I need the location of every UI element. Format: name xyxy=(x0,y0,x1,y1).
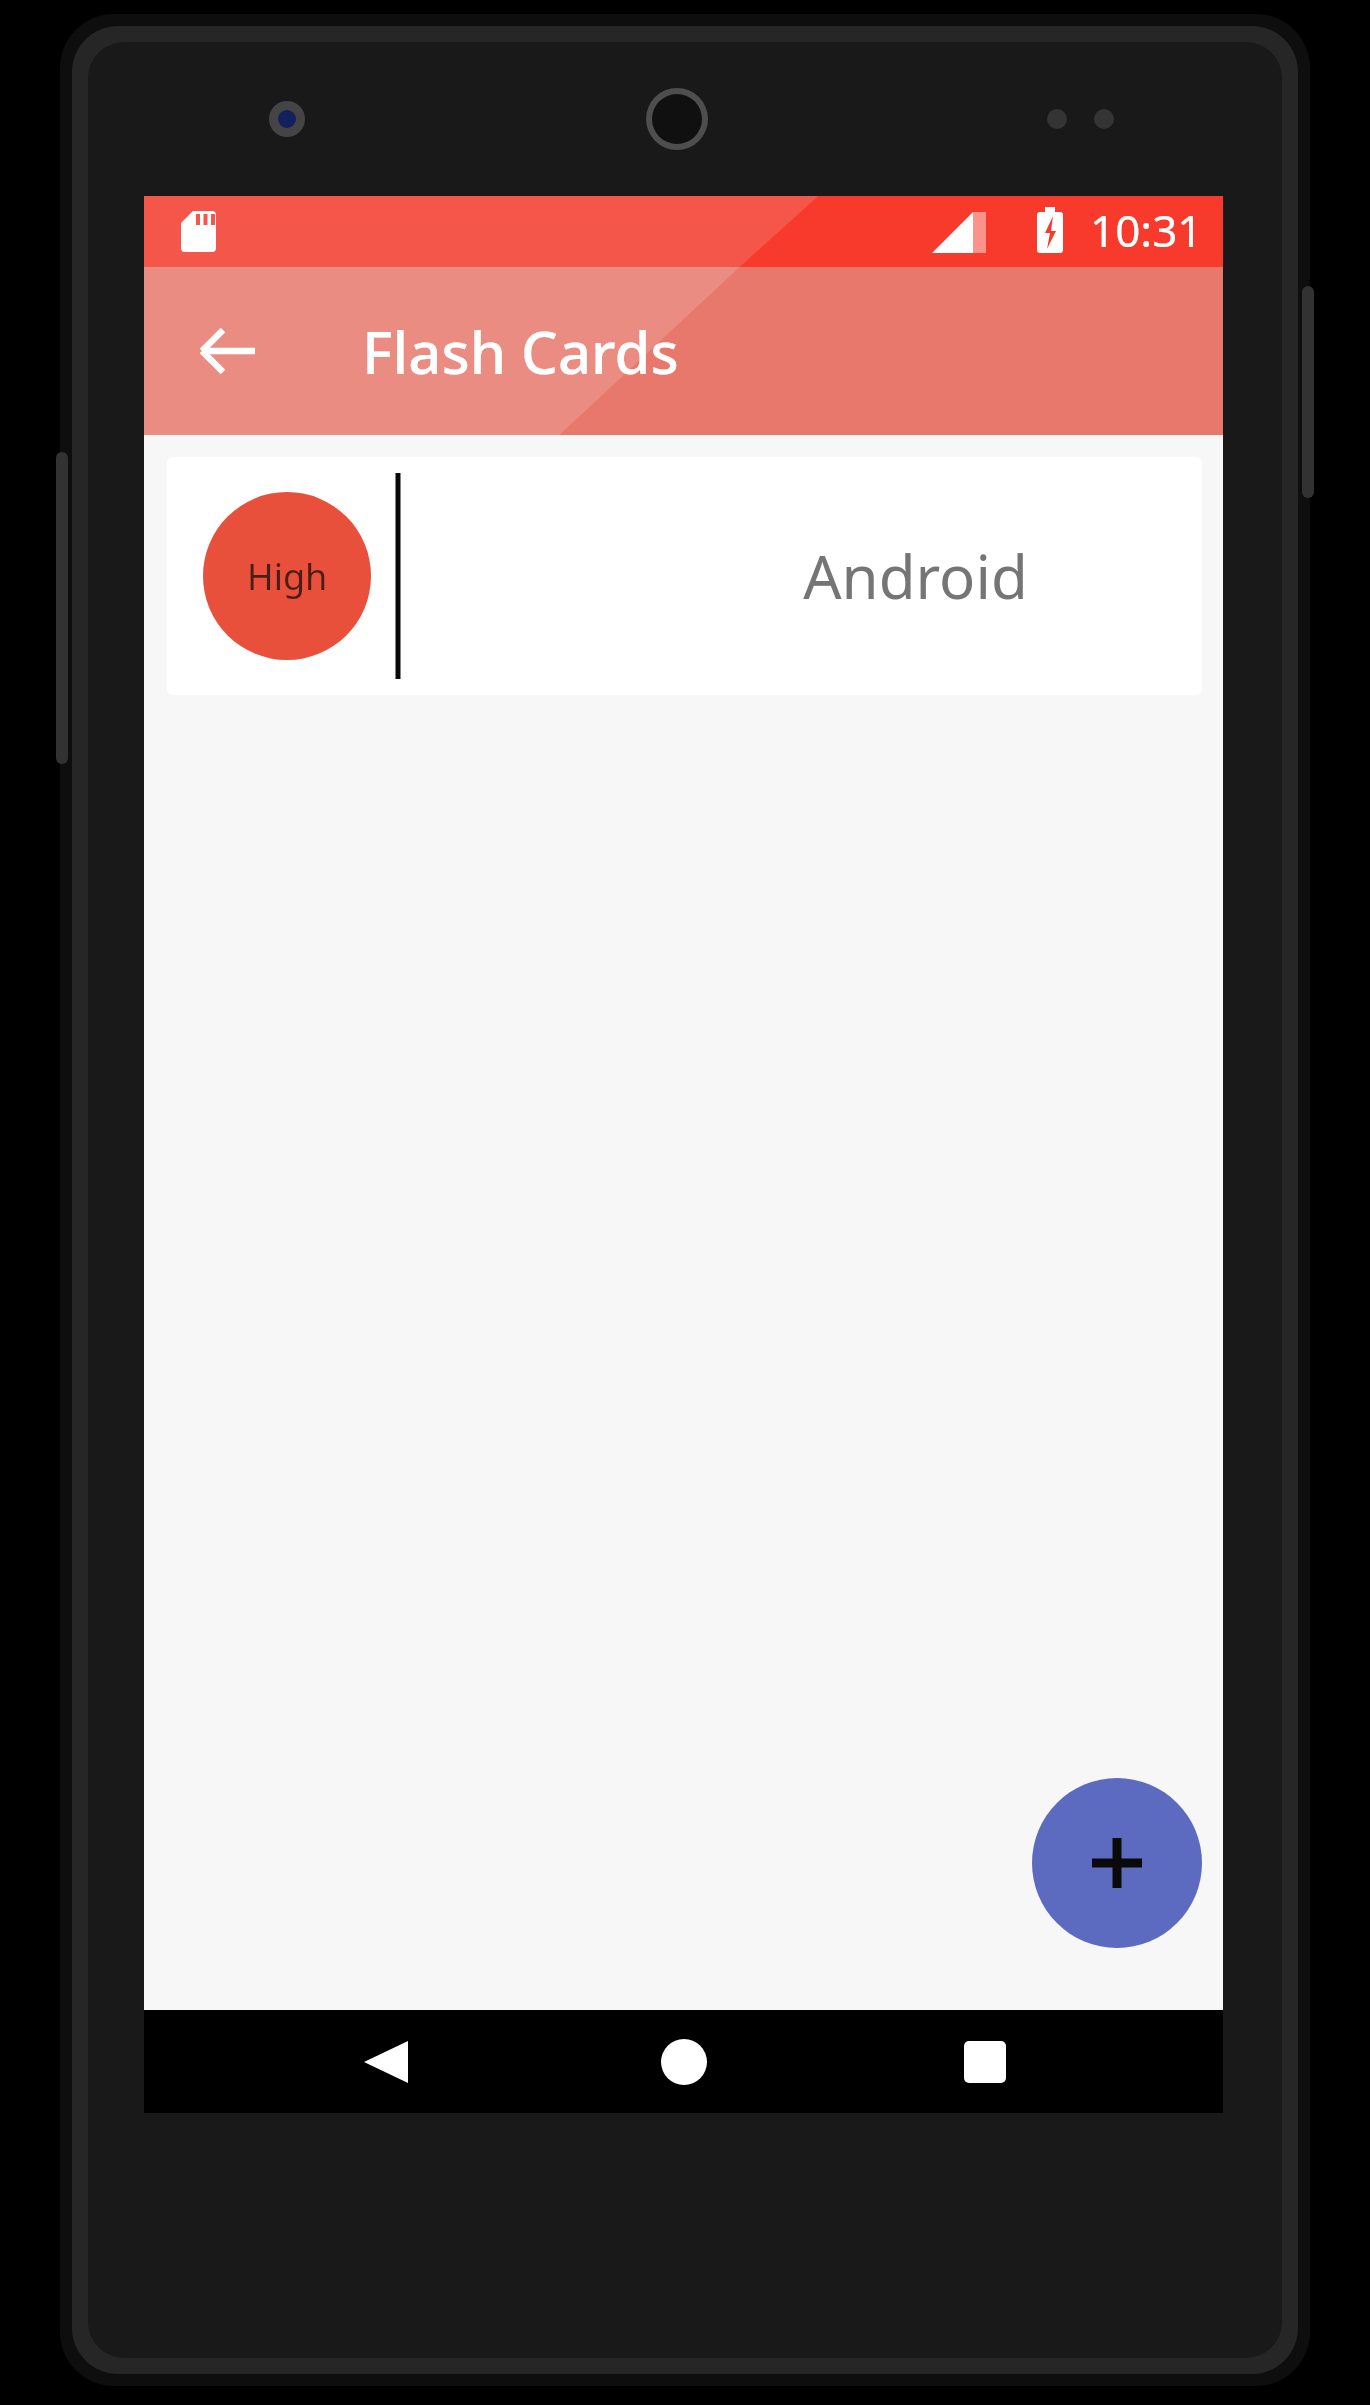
staticText: Android xyxy=(398,535,1202,617)
staticText: 10:31 xyxy=(1090,200,1203,260)
staticText: High xyxy=(247,552,328,601)
button[interactable]: Add flash card xyxy=(1032,1778,1202,1948)
button[interactable]: Home xyxy=(624,2010,744,2113)
button[interactable]: Back xyxy=(325,2010,445,2113)
button[interactable]: High xyxy=(167,457,1202,695)
button[interactable]: Navigate up xyxy=(180,303,276,399)
button[interactable]: Recent apps xyxy=(925,2010,1045,2113)
staticText: Flash Cards xyxy=(362,312,679,391)
